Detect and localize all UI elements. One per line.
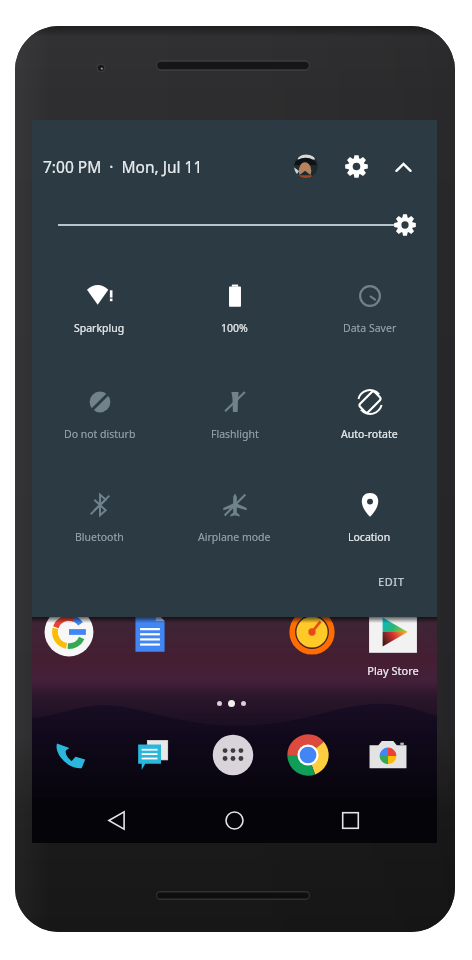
staticText: Sparkplug bbox=[74, 321, 125, 335]
button[interactable]: Sparkplug bbox=[32, 283, 167, 347]
button[interactable] bbox=[366, 605, 420, 659]
button[interactable]: Settings bbox=[343, 153, 369, 179]
button[interactable]: All apps bbox=[207, 729, 259, 781]
button[interactable]: Collapse bbox=[390, 154, 416, 180]
button[interactable] bbox=[42, 605, 96, 659]
staticText: Play Store bbox=[361, 663, 425, 678]
button[interactable]: Brightness bbox=[58, 212, 416, 238]
staticText: Auto-rotate bbox=[341, 427, 398, 441]
button[interactable]: Do not disturb bbox=[32, 389, 167, 453]
button[interactable]: Bluetooth bbox=[32, 492, 167, 556]
button[interactable]: Airplane mode bbox=[167, 492, 302, 556]
button[interactable]: Back bbox=[93, 797, 139, 843]
button[interactable]: Home bbox=[211, 797, 257, 843]
staticText: Location bbox=[348, 530, 391, 544]
button[interactable] bbox=[285, 605, 339, 659]
button[interactable]: 100% bbox=[167, 283, 302, 347]
staticText: Airplane mode bbox=[198, 530, 271, 544]
staticText: Bluetooth bbox=[75, 530, 124, 544]
button[interactable]: Phone bbox=[46, 729, 98, 781]
staticText: Do not disturb bbox=[64, 427, 136, 441]
button[interactable] bbox=[123, 605, 177, 659]
button[interactable]: Camera bbox=[362, 729, 414, 781]
staticText: Data Saver bbox=[343, 321, 397, 335]
staticText: 7:00 PM · Mon, Jul 11 bbox=[43, 156, 203, 177]
staticText: EDIT bbox=[378, 574, 405, 589]
button[interactable]: EDIT bbox=[370, 566, 413, 597]
button[interactable]: Recents bbox=[327, 797, 373, 843]
button[interactable]: Auto-rotate bbox=[302, 389, 437, 453]
staticText: Flashlight bbox=[211, 427, 259, 441]
button[interactable]: Chrome bbox=[282, 729, 334, 781]
button[interactable]: User profile bbox=[294, 154, 318, 178]
staticText: 100% bbox=[221, 321, 248, 335]
button[interactable]: Data Saver bbox=[302, 283, 437, 347]
button[interactable]: Flashlight bbox=[167, 389, 302, 453]
button[interactable]: Location bbox=[302, 492, 437, 556]
button[interactable]: Messages bbox=[128, 729, 180, 781]
